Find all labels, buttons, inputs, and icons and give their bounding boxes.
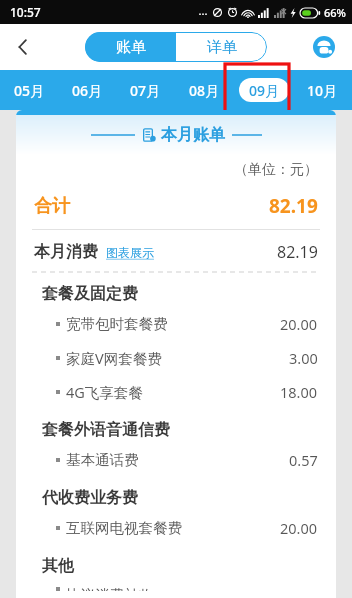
staticText: 07月 (130, 81, 161, 100)
button[interactable]: 07月 (116, 70, 175, 110)
staticText: 10月 (307, 81, 338, 100)
button[interactable]: 详单 (176, 32, 267, 62)
button[interactable]: 互联网电视套餐费 (16, 511, 336, 545)
button[interactable]: Customer service (308, 31, 340, 63)
staticText: 其他 (42, 556, 74, 576)
button[interactable]: 4G飞享套餐 (16, 375, 336, 409)
staticText: 套餐外语音通信费 (42, 420, 170, 440)
staticText: 10:57 (10, 4, 41, 20)
staticText: 0.57 (289, 450, 318, 470)
button[interactable]: 账单 (85, 32, 176, 62)
staticText: 18.00 (280, 382, 318, 402)
staticText: 图表展示 (106, 245, 154, 260)
staticText: 4G飞享套餐 (66, 382, 143, 402)
staticText: 3.00 (289, 348, 318, 368)
button[interactable]: 协议消费补收 (16, 579, 336, 598)
staticText: 09月 (249, 81, 280, 100)
button[interactable]: 08月 (175, 70, 234, 110)
staticText: 82.19 (269, 193, 318, 219)
staticText: 套餐及固定费 (42, 284, 138, 304)
button[interactable]: 05月 (0, 70, 58, 110)
button[interactable]: 家庭V网套餐费 (16, 341, 336, 375)
staticText: 详单 (207, 38, 237, 57)
staticText: 互联网电视套餐费 (66, 519, 182, 537)
staticText: 05月 (14, 81, 45, 100)
staticText: 协议消费补收 (66, 586, 153, 591)
staticText: 家庭V网套餐费 (66, 348, 162, 368)
staticText: 本月账单 (161, 125, 225, 145)
staticText: 82.19 (277, 241, 318, 263)
button[interactable]: 基本通话费 (16, 443, 336, 477)
staticText: 06月 (72, 81, 103, 100)
staticText: 66% (324, 5, 346, 20)
staticText: 20.00 (280, 518, 318, 538)
staticText: 20.00 (280, 314, 318, 334)
staticText: 宽带包时套餐费 (66, 315, 168, 333)
staticText: 本月消费 (34, 242, 98, 262)
staticText: 08月 (189, 81, 220, 100)
staticText: 账单 (116, 38, 146, 57)
button[interactable]: 09月 (234, 70, 293, 110)
staticText: 代收费业务费 (42, 488, 138, 508)
button[interactable]: 06月 (58, 70, 116, 110)
button[interactable]: Back (0, 24, 46, 70)
button[interactable]: 宽带包时套餐费 (16, 307, 336, 341)
button[interactable]: 10月 (293, 70, 352, 110)
staticText: 基本通话费 (66, 451, 139, 469)
staticText: 合计 (34, 195, 70, 218)
staticText: （单位：元） (234, 161, 318, 179)
button[interactable]: 图表展示 (106, 245, 154, 260)
